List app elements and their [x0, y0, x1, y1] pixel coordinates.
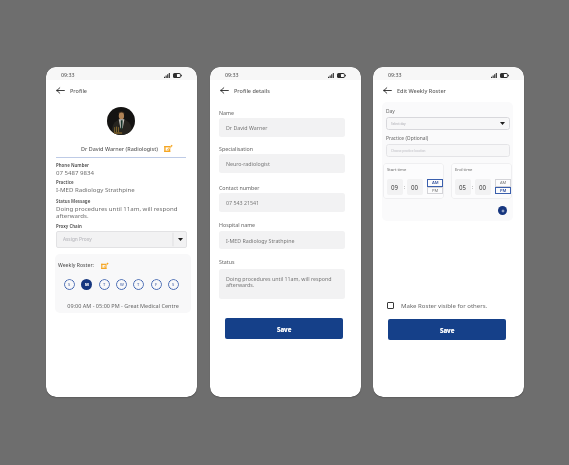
button[interactable]: I-MED Radiology Strathpine: [219, 231, 345, 249]
staticText: M: [85, 282, 89, 288]
staticText: Practice: [56, 179, 74, 185]
button[interactable]: Choose practice location: [386, 144, 510, 157]
button[interactable]: F: [151, 279, 162, 290]
button[interactable]: 09: [387, 179, 403, 195]
staticText: Phone Number: [56, 162, 90, 168]
button[interactable]: Save: [225, 318, 343, 339]
staticText: 09:33: [388, 71, 402, 78]
button[interactable]: Assign Proxy: [56, 231, 187, 248]
button[interactable]: M: [81, 279, 92, 290]
staticText: 07 5487 9834: [56, 168, 95, 176]
staticText: Proxy Chain: [56, 223, 82, 229]
staticText: Profile: [70, 87, 88, 94]
button[interactable]: 00: [475, 179, 491, 195]
button[interactable]: AM: [495, 179, 511, 187]
button[interactable]: Select day: [386, 117, 510, 130]
button[interactable]: Make Roster visible for others.: [387, 300, 488, 311]
staticText: Edit Weekly Roster: [397, 87, 446, 94]
button[interactable]: Edit profile: [164, 144, 172, 152]
staticText: Status Message: [56, 198, 91, 204]
staticText: Save: [440, 326, 455, 334]
staticText: W: [120, 282, 124, 288]
button[interactable]: Back: [55, 85, 66, 96]
staticText: Neuro-radiologist: [226, 160, 270, 167]
staticText: Make Roster visible for others.: [401, 302, 488, 310]
staticText: 09:33: [225, 71, 239, 78]
staticText: Specialisation: [219, 145, 254, 152]
staticText: AM: [500, 180, 507, 186]
staticText: 09: [391, 183, 399, 191]
staticText: PM: [432, 188, 439, 194]
button[interactable]: PM: [495, 187, 511, 194]
staticText: 09:00 AM - 05:00 PM - Great Medical Cent…: [55, 302, 191, 309]
staticText: 07 543 21541: [226, 199, 260, 206]
staticText: Day: [386, 108, 395, 115]
button[interactable]: Neuro-radiologist: [219, 154, 345, 173]
button[interactable]: Back: [382, 85, 393, 96]
staticText: T: [103, 282, 106, 288]
button[interactable]: Doing procedures until 11am, will respon…: [219, 269, 345, 299]
button[interactable]: T: [99, 279, 110, 290]
button[interactable]: Edit weekly roster: [101, 262, 108, 269]
staticText: F: [155, 282, 158, 288]
staticText: I-MED Radiology Strathpine: [56, 185, 135, 193]
staticText: Practice (Optional): [386, 135, 429, 142]
staticText: Status: [219, 258, 235, 265]
staticText: S: [68, 282, 71, 288]
staticText: PM: [500, 188, 507, 194]
staticText: :: [472, 184, 474, 191]
staticText: 09:33: [61, 71, 75, 78]
staticText: :: [404, 184, 406, 191]
staticText: Contact number: [219, 184, 260, 191]
staticText: T: [137, 282, 140, 288]
staticText: 00: [479, 183, 487, 191]
staticText: Profile details: [234, 87, 270, 94]
button[interactable]: AM: [427, 179, 443, 187]
staticText: 00: [411, 183, 419, 191]
staticText: I-MED Radiology Strathpine: [226, 237, 295, 244]
staticText: Start time: [387, 167, 407, 173]
staticText: AM: [432, 180, 439, 186]
button[interactable]: Dr David Warner: [219, 118, 345, 137]
button[interactable]: Save: [388, 319, 506, 340]
button[interactable]: PM: [427, 187, 443, 194]
button[interactable]: 05: [455, 179, 471, 195]
button[interactable]: W: [116, 279, 127, 290]
staticText: End time: [455, 167, 473, 173]
staticText: Name: [219, 109, 234, 116]
staticText: Doing procedures until 11am, will respon…: [56, 204, 187, 220]
button[interactable]: S: [168, 279, 179, 290]
staticText: Weekly Roster:: [58, 262, 94, 269]
button[interactable]: 00: [407, 179, 423, 195]
button[interactable]: S: [64, 279, 75, 290]
button[interactable]: Add roster entry: [498, 206, 507, 215]
staticText: Assign Proxy: [63, 236, 173, 243]
staticText: Choose practice location: [391, 149, 426, 153]
button[interactable]: 07 543 21541: [219, 193, 345, 212]
staticText: Hospital name: [219, 221, 256, 228]
staticText: 05: [459, 183, 467, 191]
staticText: Dr David Warner: [226, 124, 268, 131]
button[interactable]: Back: [219, 85, 230, 96]
staticText: Doing procedures until 11am, will respon…: [226, 275, 340, 289]
staticText: Save: [277, 325, 292, 333]
staticText: Select day: [391, 122, 500, 126]
staticText: S: [172, 282, 175, 288]
button[interactable]: T: [133, 279, 144, 290]
staticText: Dr David Warner (Radiologist): [81, 145, 159, 152]
